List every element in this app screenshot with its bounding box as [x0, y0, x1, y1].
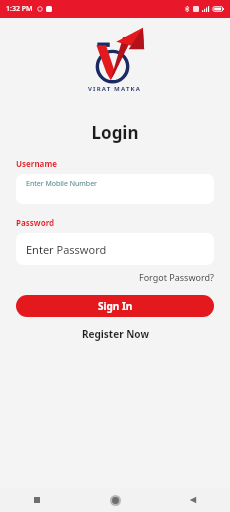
- button[interactable]: Back: [182, 489, 204, 511]
- staticText: VIRAT MATKA: [88, 85, 142, 93]
- button[interactable]: Recents: [26, 489, 48, 511]
- staticText: Enter Password: [26, 242, 107, 257]
- staticText: Forgot Password?: [139, 271, 214, 283]
- staticText: Sign In: [98, 299, 133, 313]
- staticText: Password: [16, 217, 55, 228]
- button[interactable]: Enter Password: [16, 233, 214, 265]
- button[interactable]: Sign In: [16, 295, 214, 317]
- button[interactable]: Home: [104, 489, 126, 511]
- staticText: Login: [0, 121, 230, 144]
- button[interactable]: Enter Mobile Number: [16, 174, 214, 204]
- staticText: 1:32 PM: [6, 4, 33, 14]
- staticText: Username: [16, 158, 57, 169]
- staticText: Register Now: [82, 327, 149, 341]
- staticText: Enter Mobile Number: [26, 179, 98, 189]
- button[interactable]: Register Now: [0, 327, 230, 341]
- button[interactable]: Forgot Password?: [139, 271, 214, 283]
